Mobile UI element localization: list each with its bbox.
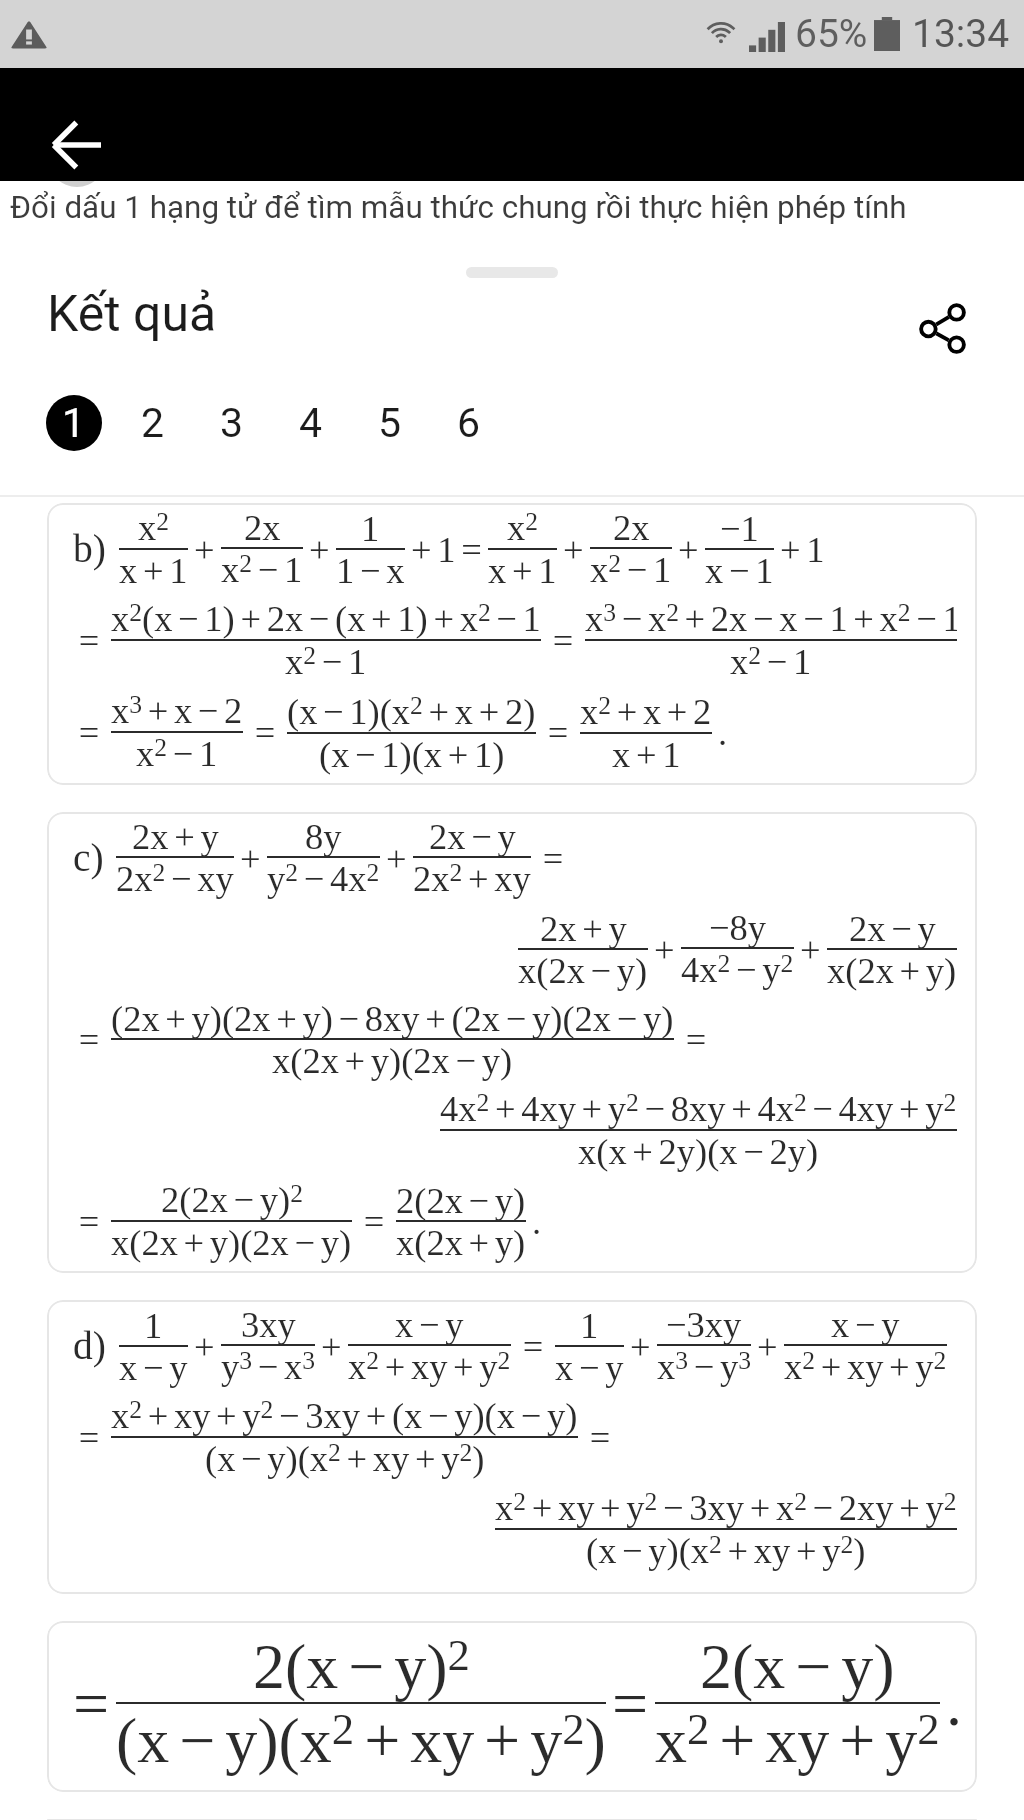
staticText: = (249, 712, 281, 752)
staticText: + (630, 1326, 651, 1366)
staticText: 3xy (241, 1304, 296, 1344)
staticText: 2(2x − y)2 (161, 1179, 303, 1220)
staticText: 2x (244, 507, 281, 547)
staticText: + (194, 1326, 215, 1366)
staticText: −3xy (666, 1304, 742, 1344)
button[interactable]: c) (47, 812, 977, 1273)
staticText: 65% (795, 11, 868, 57)
staticText: y2 − 4x2 (267, 858, 380, 899)
staticText: x − y (831, 1304, 900, 1344)
button[interactable]: Share (897, 283, 987, 373)
button[interactable]: 5 (362, 388, 441, 458)
button[interactable]: 6 (441, 388, 520, 458)
staticText: = (73, 1417, 105, 1457)
staticText: 2x + y (132, 816, 219, 856)
staticText: x2 − 1 (285, 641, 367, 682)
staticText: + 1 (780, 529, 825, 569)
button[interactable]: = (47, 1621, 977, 1792)
staticText: x3 + x − 2 (111, 690, 243, 731)
staticText: + (194, 529, 215, 569)
staticText: x2 − 1 (136, 733, 218, 774)
staticText: 2x (613, 507, 650, 547)
staticText: = (680, 1019, 712, 1059)
staticText: + (386, 838, 407, 878)
staticText: = (547, 620, 579, 660)
staticText: (x − 1)(x2 + x + 2) (287, 691, 536, 732)
staticText: (x − y)(x2 + xy + y2) (586, 1530, 866, 1571)
staticText: x − 1 (705, 550, 774, 590)
staticText: 2x + y (540, 908, 627, 948)
staticText: x(x + 2y)(x − 2y) (578, 1131, 819, 1171)
staticText: b) (73, 527, 113, 571)
staticText: x − y (555, 1347, 624, 1387)
staticText: x2 (138, 507, 170, 548)
staticText: = (542, 712, 574, 752)
button[interactable]: Back (28, 97, 124, 193)
staticText: . (946, 1668, 962, 1739)
staticText: x + 1 (612, 734, 681, 774)
staticText: x2 (507, 507, 539, 548)
staticText: x(2x − y) (518, 950, 648, 990)
staticText: x − y (119, 1347, 188, 1387)
staticText: + (757, 1326, 778, 1366)
staticText: −8y (709, 907, 767, 947)
button[interactable]: 4 (283, 388, 362, 458)
staticText: x3 − x2 + 2x − x − 1 + x2 − 1 (585, 598, 957, 639)
staticText: (x − 1)(x + 1) (319, 734, 505, 774)
staticText: (2x + y)(2x + y) − 8xy + (2x − y)(2x − y… (111, 998, 674, 1038)
button[interactable]: d) (47, 1300, 977, 1594)
staticText: + (800, 929, 821, 969)
staticText: 1 − x (336, 550, 405, 590)
staticText: + (654, 929, 675, 969)
staticText: 2(x − y) (700, 1631, 895, 1702)
staticText: . (718, 712, 728, 752)
staticText: = (612, 1668, 649, 1739)
staticText: x2 − 1 (590, 549, 672, 590)
staticText: 2x2 − xy (116, 858, 234, 899)
staticText: (x − y)(x2 + xy + y2) (205, 1438, 485, 1479)
staticText: x2 + xy + y2 (784, 1346, 947, 1387)
staticText: = (73, 1201, 105, 1241)
staticText: 6 (457, 399, 481, 447)
staticText: x(2x + y) (827, 950, 957, 990)
staticText: = (584, 1417, 616, 1457)
button[interactable]: b) (47, 503, 977, 785)
staticText: 2x2 + xy (413, 858, 531, 899)
staticText: x2 + xy + y2 − 3xy + (x − y)(x − y) (111, 1395, 578, 1436)
staticText: −1 (720, 508, 759, 548)
staticText: = (537, 838, 569, 878)
staticText: Đổi dấu 1 hạng tử để tìm mẫu thức chung … (10, 189, 1024, 226)
staticText: = (73, 712, 105, 752)
staticText: x2 + x + 2 (580, 691, 712, 732)
button[interactable]: 2 (125, 388, 204, 458)
staticText: x(2x + y)(2x − y) (111, 1222, 352, 1262)
staticText: = (73, 1668, 110, 1739)
staticText: 4x2 − y2 (681, 949, 794, 990)
staticText: 2 (141, 399, 165, 447)
staticText: d) (73, 1324, 113, 1368)
staticText: x − y (395, 1304, 464, 1344)
staticText: = (517, 1326, 549, 1366)
staticText: . (532, 1201, 542, 1241)
button[interactable]: 3 (204, 388, 283, 458)
staticText: x2 − 1 (221, 549, 303, 590)
staticText: + (321, 1326, 342, 1366)
staticText: c) (73, 836, 110, 880)
staticText: 1 (144, 1305, 163, 1345)
staticText: 1 (361, 508, 380, 548)
staticText: 8y (305, 816, 342, 856)
staticText: 2x − y (849, 908, 936, 948)
staticText: 2(2x − y) (396, 1180, 526, 1220)
staticText: 13:34 (912, 11, 1010, 57)
staticText: x2(x − 1) + 2x − (x + 1) + x2 − 1 (111, 598, 541, 639)
button[interactable]: 1 (46, 388, 125, 458)
staticText: 4 (299, 399, 323, 447)
staticText: = (73, 620, 105, 660)
staticText: 1 (62, 399, 86, 447)
staticText: 1 (580, 1305, 599, 1345)
staticText: + (678, 529, 699, 569)
staticText: + (240, 838, 261, 878)
staticText: = (73, 1019, 105, 1059)
staticText: 5 (378, 399, 402, 447)
